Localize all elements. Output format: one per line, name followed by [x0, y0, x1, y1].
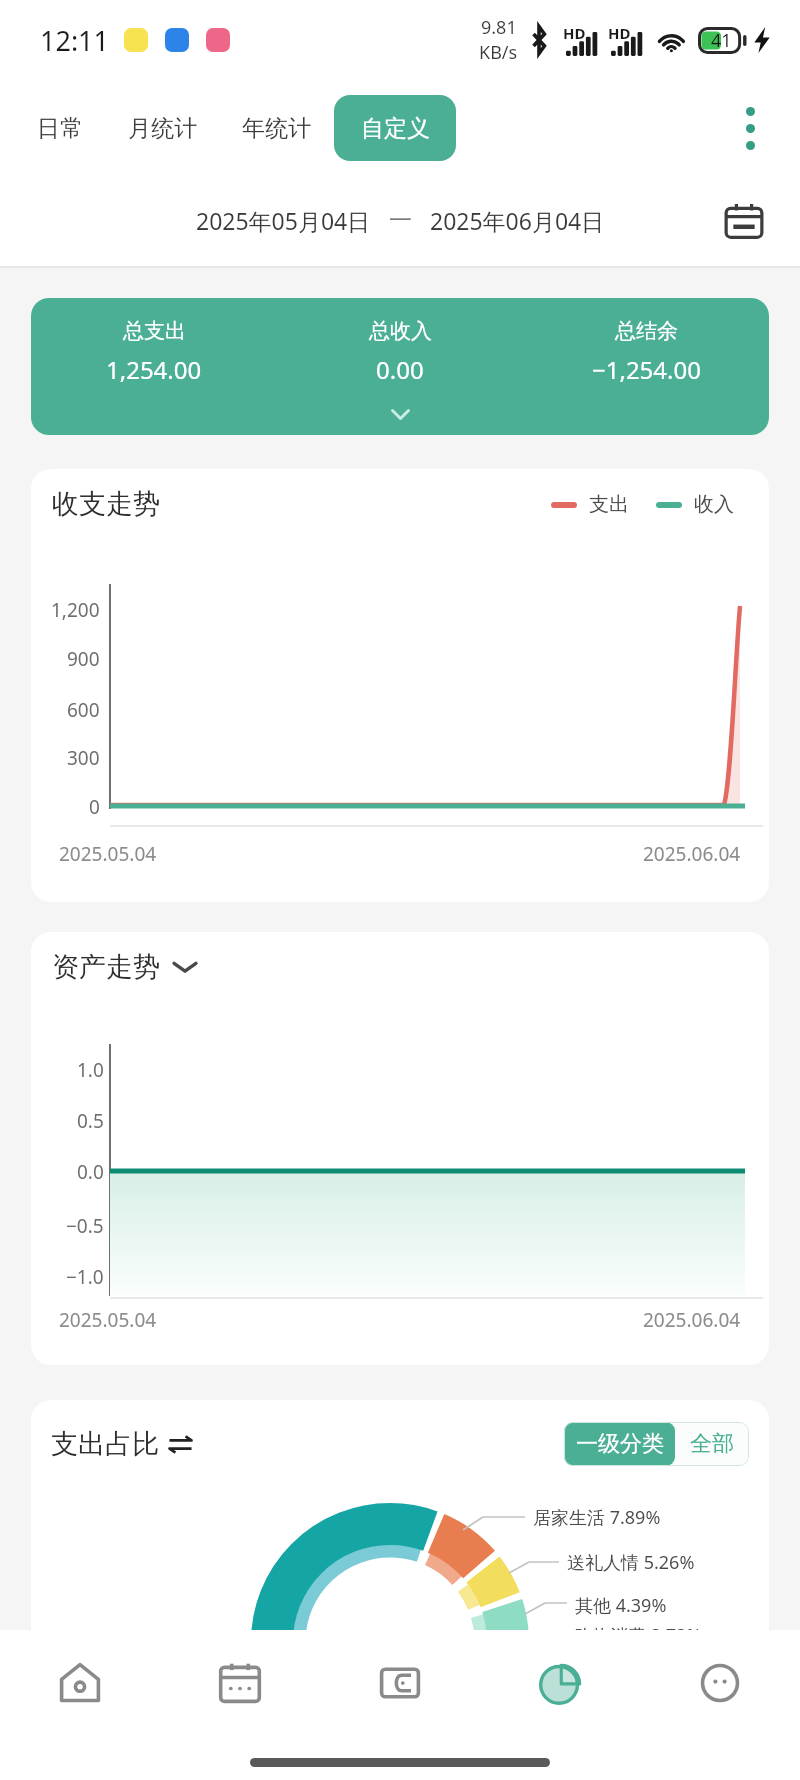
button[interactable]: Statistics	[480, 1630, 640, 1736]
button[interactable]: Profile	[640, 1630, 800, 1736]
staticText: 一级分类	[576, 1430, 664, 1458]
staticText: 9.81	[481, 15, 517, 40]
staticText: 1.0	[77, 1057, 104, 1083]
staticText: −1.0	[66, 1264, 104, 1290]
staticText: KB/s	[479, 40, 518, 65]
staticText: 全部	[690, 1430, 734, 1458]
button[interactable]: 资产走势	[52, 950, 198, 984]
staticText: 日常	[37, 114, 83, 143]
staticText: 自定义	[361, 114, 430, 143]
staticText: 600	[67, 697, 100, 723]
staticText: 购物消费 3.73%	[574, 1623, 702, 1648]
staticText: 2025.06.04	[643, 1307, 741, 1333]
button[interactable]: 日常	[14, 95, 105, 161]
button[interactable]: 一级分类	[564, 1422, 675, 1466]
button[interactable]: 总支出	[31, 298, 769, 435]
staticText: −1,254.00	[592, 353, 701, 386]
staticText: 2025年05月04日	[196, 205, 371, 236]
staticText: 2025.06.04	[643, 841, 741, 867]
staticText: 年统计	[242, 114, 311, 143]
button[interactable]: 2025年05月04日	[0, 175, 800, 266]
staticText: 1,200	[51, 597, 100, 623]
button[interactable]: 月统计	[105, 95, 219, 161]
button[interactable]: 自定义	[334, 95, 456, 161]
staticText: 一	[389, 206, 412, 235]
staticText: 2025.05.04	[59, 1307, 157, 1333]
staticText: 收入	[694, 492, 734, 517]
staticText: 2025年06月04日	[430, 205, 605, 236]
staticText: 0	[89, 794, 100, 820]
button[interactable]: 全部	[675, 1422, 749, 1466]
staticText: 1,254.00	[106, 353, 202, 386]
staticText: 300	[67, 745, 100, 771]
staticText: 总结余	[615, 318, 678, 344]
staticText: 0.0	[77, 1159, 104, 1185]
staticText: 居家生活 7.89%	[533, 1505, 661, 1530]
staticText: 送礼人情 5.26%	[567, 1550, 695, 1575]
button[interactable]: Switch chart	[163, 1427, 197, 1461]
button[interactable]: 年统计	[219, 95, 333, 161]
button[interactable]: Home	[0, 1630, 160, 1736]
staticText: 2025.05.04	[59, 841, 157, 867]
staticText: 41	[711, 28, 732, 53]
staticText: 资产走势	[52, 950, 160, 984]
staticText: 月统计	[128, 114, 197, 143]
staticText: 其他 4.39%	[575, 1593, 667, 1618]
button[interactable]: Wallet	[320, 1630, 480, 1736]
staticText: HD	[563, 23, 586, 43]
staticText: 总收入	[369, 318, 432, 344]
staticText: 收支走势	[52, 487, 160, 521]
staticText: HD	[608, 23, 631, 43]
button[interactable]: Pick date range	[688, 175, 800, 266]
staticText: 支出	[589, 492, 629, 517]
staticText: −0.5	[66, 1213, 104, 1239]
staticText: 900	[67, 646, 100, 672]
button[interactable]: More options	[706, 84, 794, 172]
staticText: 支出占比	[51, 1427, 159, 1461]
staticText: 12:11	[40, 22, 110, 59]
staticText: 总支出	[123, 318, 186, 344]
staticText: 0.00	[376, 353, 424, 386]
staticText: 0.5	[77, 1108, 104, 1134]
button[interactable]: Calendar	[160, 1630, 320, 1736]
